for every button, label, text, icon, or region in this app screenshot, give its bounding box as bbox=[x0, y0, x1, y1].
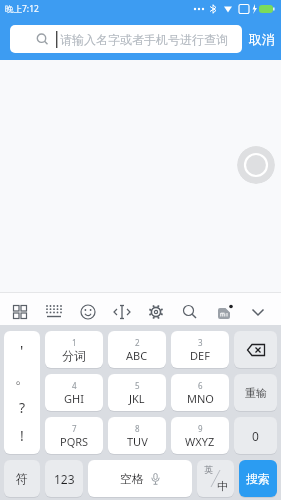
button[interactable] bbox=[234, 331, 277, 368]
button[interactable] bbox=[0, 292, 36, 325]
button[interactable]: 请输入名字或者手机号进行查询 bbox=[10, 25, 242, 53]
staticText: MNO bbox=[187, 391, 214, 406]
button[interactable] bbox=[106, 292, 141, 325]
button[interactable]: 8 bbox=[108, 417, 166, 454]
staticText: 8 bbox=[135, 423, 140, 434]
button[interactable]: 3 bbox=[171, 331, 229, 368]
button[interactable]: ' bbox=[4, 331, 40, 454]
button[interactable]: 9 bbox=[171, 417, 229, 454]
button[interactable]: 0 bbox=[234, 417, 277, 454]
staticText: 。 bbox=[15, 369, 30, 388]
staticText: 取消 bbox=[249, 31, 275, 47]
staticText: 9 bbox=[198, 423, 203, 434]
button[interactable] bbox=[237, 146, 275, 184]
staticText: 英 bbox=[204, 464, 213, 475]
staticText: 4 bbox=[72, 380, 77, 391]
staticText: 0 bbox=[252, 428, 259, 444]
staticText: 分词 bbox=[62, 348, 86, 363]
button[interactable] bbox=[141, 292, 176, 325]
button[interactable] bbox=[36, 292, 71, 325]
staticText: 空格 bbox=[120, 471, 144, 486]
button[interactable]: 123 bbox=[45, 460, 83, 497]
staticText: 请输入名字或者手机号进行查询 bbox=[60, 32, 228, 47]
staticText: ! bbox=[20, 426, 24, 445]
button[interactable]: 5 bbox=[108, 374, 166, 411]
staticText: ' bbox=[20, 340, 24, 360]
staticText: 1 bbox=[72, 337, 77, 348]
button[interactable]: 搜索 bbox=[239, 460, 277, 497]
staticText: 5 bbox=[135, 380, 140, 391]
button[interactable] bbox=[71, 292, 106, 325]
button[interactable]: 英 bbox=[197, 460, 234, 497]
staticText: DEF bbox=[190, 348, 210, 363]
staticText: 6 bbox=[198, 380, 203, 391]
staticText: ? bbox=[19, 398, 26, 417]
button[interactable]: 空格 bbox=[88, 460, 192, 497]
staticText: 123 bbox=[54, 471, 75, 487]
staticText: 重输 bbox=[245, 386, 267, 400]
staticText: 晚上7:12 bbox=[5, 3, 39, 15]
staticText: 符 bbox=[16, 471, 28, 486]
staticText: JKL bbox=[129, 391, 145, 406]
staticText: PQRS bbox=[60, 434, 89, 449]
button[interactable] bbox=[246, 292, 281, 325]
button[interactable]: 1 bbox=[45, 331, 103, 368]
button[interactable]: 2 bbox=[108, 331, 166, 368]
button[interactable]: 4 bbox=[45, 374, 103, 411]
staticText: WXYZ bbox=[185, 434, 215, 449]
staticText: 中 bbox=[217, 479, 228, 493]
staticText: 2 bbox=[135, 337, 140, 348]
staticText: GHI bbox=[64, 391, 84, 406]
button[interactable]: 符 bbox=[4, 460, 40, 497]
button[interactable] bbox=[211, 292, 246, 325]
staticText: TUV bbox=[127, 434, 148, 449]
button[interactable]: 6 bbox=[171, 374, 229, 411]
staticText: 7 bbox=[72, 423, 77, 434]
button[interactable] bbox=[176, 292, 211, 325]
staticText: 搜索 bbox=[246, 471, 270, 486]
staticText: 3 bbox=[198, 337, 203, 348]
button[interactable]: 7 bbox=[45, 417, 103, 454]
button[interactable]: 取消 bbox=[242, 18, 281, 60]
button[interactable]: 重输 bbox=[234, 374, 277, 411]
staticText: ABC bbox=[126, 348, 148, 363]
